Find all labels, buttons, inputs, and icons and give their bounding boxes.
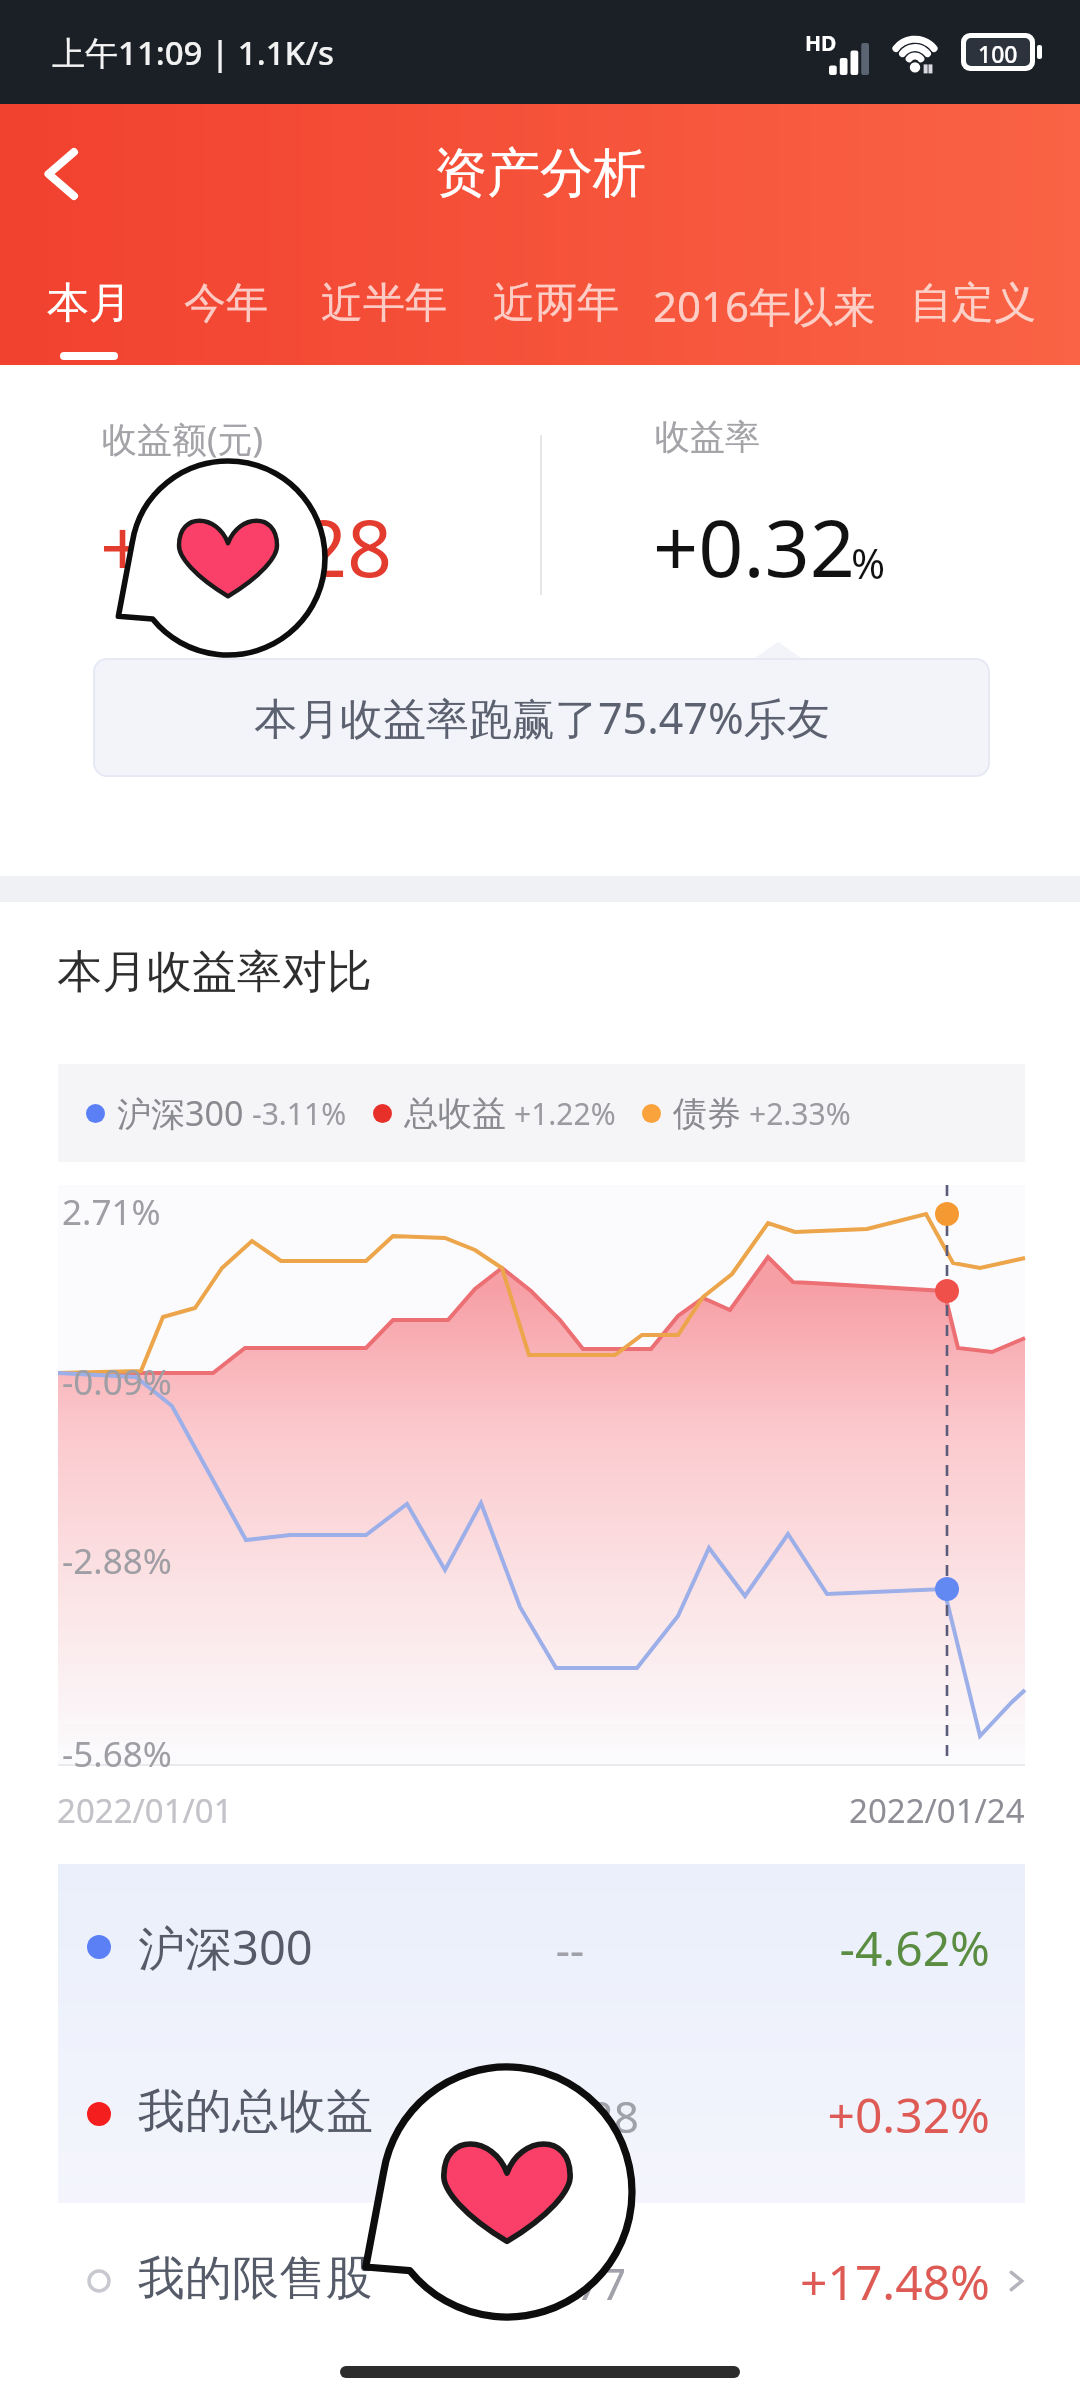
staticText: 收益额(元) (102, 415, 264, 463)
staticText: 收益率 (655, 415, 760, 459)
staticText: +247.28 (100, 493, 393, 601)
button[interactable]: Back (14, 126, 110, 222)
button[interactable]: 我的限售股 (0, 2198, 1080, 2365)
button[interactable]: 本月 (47, 277, 131, 360)
staticText: -3.11% (252, 1093, 347, 1134)
staticText: 本月收益率对比 (57, 944, 372, 1001)
staticText: 2.71% (62, 1188, 161, 1236)
staticText: 2022/01/01 (57, 1788, 233, 1833)
staticText: -- (430, 1919, 710, 1979)
staticText: -2.88% (62, 1537, 172, 1585)
staticText: +0.32% (640, 2082, 990, 2147)
button[interactable]: 近两年 (493, 277, 619, 360)
button[interactable]: 债券 (642, 1092, 851, 1135)
staticText: 总收益 (404, 1092, 506, 1135)
staticText: -4.62% (640, 1915, 990, 1980)
staticText: 我的限售股 (138, 2249, 373, 2308)
staticText: 债券 (673, 1092, 741, 1135)
staticText: 2022/01/24 (849, 1788, 1025, 1833)
staticText: -0.09% (62, 1358, 172, 1406)
staticText: 沪深300 (117, 1090, 244, 1136)
staticText: -5.68% (62, 1730, 172, 1778)
staticText: +0.32 (653, 493, 855, 601)
staticText: +2.33% (749, 1093, 851, 1134)
button[interactable]: 今年 (184, 277, 268, 360)
button[interactable]: 总收益 (373, 1092, 616, 1135)
button[interactable]: 沪深300 (86, 1090, 347, 1136)
staticText: 今年 (184, 277, 268, 330)
button[interactable]: 沪深300 (0, 1864, 1080, 2031)
staticText: 自定义 (910, 277, 1036, 330)
button[interactable]: 自定义 (910, 277, 1036, 360)
staticText: HD (805, 29, 837, 58)
staticText: 本月 (47, 277, 131, 330)
button[interactable]: 我的总收益 (0, 2031, 1080, 2198)
staticText: 本月收益率跑赢了75.47%乐友 (254, 688, 830, 747)
staticText: % (851, 535, 886, 591)
button[interactable]: 2016年以来 (653, 277, 876, 364)
staticText: 资产分析 (434, 140, 646, 207)
staticText: 2016年以来 (653, 277, 876, 334)
staticText: +17.48% (640, 2249, 990, 2314)
staticText: 沪深300 (138, 1915, 313, 1979)
button[interactable]: 近半年 (321, 277, 447, 360)
staticText: +1.22% (514, 1093, 616, 1134)
staticText: 近两年 (493, 277, 619, 330)
staticText: 55.77 (430, 2253, 710, 2313)
staticText: 近半年 (321, 277, 447, 330)
staticText: 100 (978, 38, 1018, 66)
staticText: 上午11:09 | 1.1K/s (52, 30, 335, 75)
staticText: 247.28 (430, 2086, 710, 2146)
staticText: 我的总收益 (138, 2082, 373, 2141)
